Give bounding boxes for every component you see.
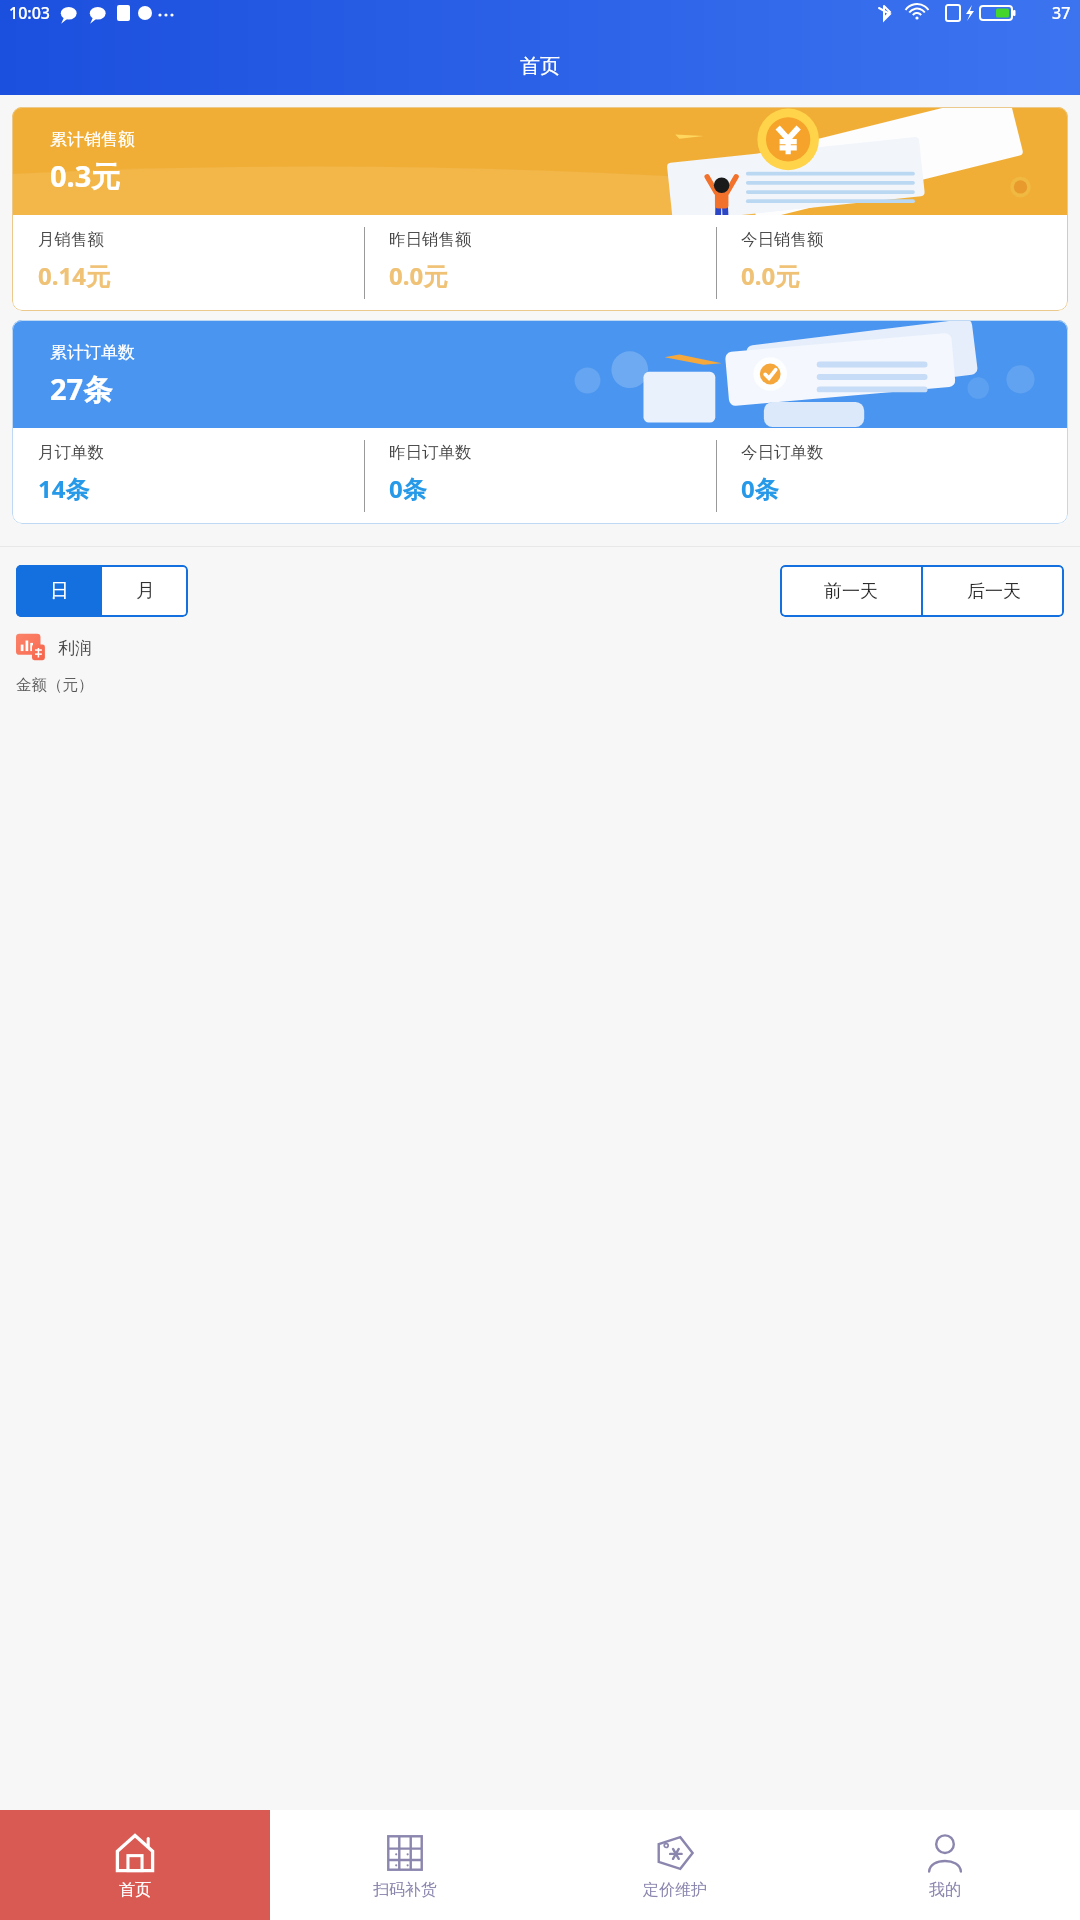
- staticText: 37: [1052, 2, 1071, 24]
- staticText: 累计销售额: [50, 129, 135, 150]
- staticText: 10:03: [9, 2, 50, 24]
- button[interactable]: 扫码补货: [270, 1810, 540, 1920]
- staticText: 扫码补货: [373, 1880, 437, 1900]
- staticText: 定价维护: [643, 1880, 707, 1900]
- staticText: 后一天: [967, 580, 1021, 603]
- staticText: 月: [136, 579, 155, 603]
- staticText: 0.14元: [38, 259, 110, 292]
- staticText: 27条: [50, 369, 113, 409]
- staticText: 利润: [58, 638, 92, 659]
- other: 扫码补货: [383, 1831, 427, 1875]
- staticText: 前一天: [824, 580, 878, 603]
- staticText: 月订单数: [38, 442, 104, 463]
- other: 首页: [113, 1831, 157, 1875]
- staticText: 首页: [119, 1880, 151, 1900]
- staticText: 金额（元）: [16, 675, 94, 695]
- staticText: 我的: [929, 1880, 961, 1900]
- button[interactable]: 累计销售额: [12, 107, 1068, 311]
- staticText: 14条: [38, 472, 90, 505]
- staticText: 今日销售额: [741, 229, 824, 250]
- staticText: 日: [50, 579, 69, 603]
- staticText: 0条: [741, 472, 779, 505]
- staticText: 今日订单数: [741, 442, 824, 463]
- button[interactable]: 前一天: [780, 565, 921, 617]
- staticText: 0.0元: [741, 259, 800, 292]
- other: 我的: [923, 1831, 967, 1875]
- button[interactable]: 我的: [810, 1810, 1080, 1920]
- button[interactable]: 月: [102, 565, 188, 617]
- staticText: 昨日订单数: [389, 442, 472, 463]
- staticText: 0.3元: [50, 156, 121, 196]
- other: 定价维护: [653, 1831, 697, 1875]
- staticText: 首页: [520, 54, 560, 79]
- staticText: 0.0元: [389, 259, 448, 292]
- staticText: 0条: [389, 472, 427, 505]
- button[interactable]: 累计订单数: [12, 320, 1068, 524]
- button[interactable]: 日: [16, 565, 102, 617]
- staticText: 累计订单数: [50, 342, 135, 363]
- button[interactable]: 定价维护: [540, 1810, 810, 1920]
- staticText: 昨日销售额: [389, 229, 472, 250]
- staticText: 月销售额: [38, 229, 104, 250]
- button[interactable]: 首页: [0, 1810, 270, 1920]
- button[interactable]: 后一天: [923, 565, 1064, 617]
